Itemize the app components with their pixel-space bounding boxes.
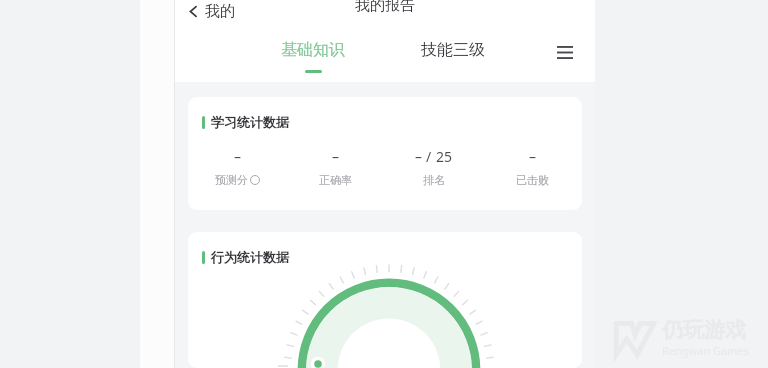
staticText: 我的 bbox=[205, 2, 235, 21]
staticText: 仍玩游戏 bbox=[662, 317, 746, 343]
staticText: 行为统计数据 bbox=[211, 249, 289, 265]
button[interactable]: 返回 我的 bbox=[187, 0, 235, 28]
staticText: 技能三级 bbox=[421, 40, 485, 60]
staticText: – bbox=[234, 147, 241, 166]
staticText: – bbox=[415, 147, 422, 166]
staticText: – bbox=[529, 147, 536, 166]
button[interactable]: 技能三级 bbox=[403, 34, 503, 82]
staticText: / bbox=[426, 147, 432, 166]
staticText: 预测分 bbox=[215, 173, 248, 187]
button[interactable]: – bbox=[286, 147, 384, 187]
staticText: 学习统计数据 bbox=[211, 114, 289, 130]
staticText: – bbox=[332, 147, 339, 166]
staticText: Rengwan Games bbox=[662, 343, 750, 358]
staticText: 排名 bbox=[423, 173, 445, 187]
button[interactable]: – bbox=[483, 147, 582, 187]
button[interactable]: 菜单 bbox=[549, 36, 581, 68]
staticText: 25 bbox=[436, 147, 453, 166]
staticText: 基础知识 bbox=[281, 40, 345, 60]
staticText: 我的报告 bbox=[355, 0, 415, 15]
button[interactable]: 基础知识 bbox=[263, 34, 363, 82]
button[interactable]: – bbox=[384, 147, 483, 187]
button[interactable]: 学习统计数据 bbox=[188, 97, 582, 210]
button[interactable]: 行为统计数据 bbox=[188, 232, 582, 368]
staticText: 已击败 bbox=[516, 173, 549, 187]
button[interactable]: – bbox=[188, 147, 286, 187]
staticText: 正确率 bbox=[319, 173, 352, 187]
